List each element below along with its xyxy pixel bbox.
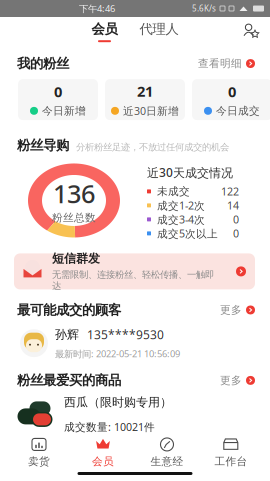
- staticText: 最新时间: 2022-05-21 10:56:09: [55, 347, 180, 360]
- staticText: 最可能成交的顾客: [17, 302, 121, 318]
- staticText: 我的粉丝: [17, 55, 69, 72]
- staticText: 更多: [220, 374, 242, 387]
- staticText: 5.6K/s: [192, 3, 216, 14]
- staticText: 21: [137, 81, 153, 101]
- staticText: 未成交: [157, 185, 190, 198]
- button[interactable]: 工作台: [199, 438, 263, 468]
- staticText: 成交3-4次: [157, 212, 205, 226]
- button[interactable]: 会员管理: [243, 22, 259, 38]
- staticText: 0: [228, 82, 236, 101]
- staticText: 136: [53, 177, 95, 210]
- staticText: 短信群发: [52, 251, 100, 266]
- staticText: 无需限制、连接粉丝、轻松传播、一触即达: [52, 269, 214, 292]
- staticText: 成交5次以上: [157, 226, 218, 240]
- staticText: 粉丝导购: [17, 137, 69, 153]
- staticText: 下午4:46: [79, 2, 115, 15]
- staticText: 卖货: [28, 455, 50, 468]
- button[interactable]: 卖货: [7, 438, 71, 468]
- staticText: 西瓜（限时购专用）: [64, 395, 172, 410]
- button[interactable]: 会员: [71, 438, 135, 468]
- button[interactable]: 孙辉: [0, 318, 270, 360]
- button[interactable]: 查看明细: [198, 55, 255, 72]
- staticText: 成交1-2次: [157, 198, 205, 212]
- button[interactable]: 更多: [220, 301, 255, 318]
- staticText: 14: [227, 198, 239, 212]
- staticText: 查看明细: [198, 57, 242, 70]
- staticText: 代理人: [139, 21, 178, 37]
- staticText: 今日新增: [42, 104, 86, 117]
- button[interactable]: 更多: [220, 372, 255, 389]
- staticText: 成交数量: 10021件: [64, 420, 155, 434]
- staticText: 122: [221, 184, 239, 198]
- staticText: 0: [233, 212, 239, 226]
- button[interactable]: 生意经: [135, 438, 199, 468]
- staticText: 会员: [91, 21, 117, 37]
- staticText: 孙辉: [55, 327, 79, 342]
- staticText: 135****9530: [87, 326, 164, 342]
- staticText: 0: [233, 226, 239, 240]
- staticText: 近30日新增: [123, 104, 179, 118]
- staticText: 0: [54, 82, 62, 101]
- staticText: 更多: [220, 303, 242, 316]
- staticText: 生意经: [150, 455, 183, 468]
- button[interactable]: 会员: [91, 21, 117, 42]
- staticText: 会员: [92, 455, 114, 468]
- staticText: 分析粉丝足迹，不放过任何成交的机会: [76, 141, 229, 153]
- staticText: 工作台: [214, 455, 247, 468]
- button[interactable]: 短信群发: [14, 253, 255, 289]
- staticText: 今日成交: [216, 104, 260, 117]
- staticText: 粉丝最爱买的商品: [17, 372, 121, 389]
- staticText: 粉丝总数: [52, 211, 96, 224]
- button[interactable]: 代理人: [139, 21, 178, 42]
- staticText: 近30天成交情况: [147, 164, 233, 180]
- button[interactable]: 西瓜（限时购专用）: [0, 389, 270, 434]
